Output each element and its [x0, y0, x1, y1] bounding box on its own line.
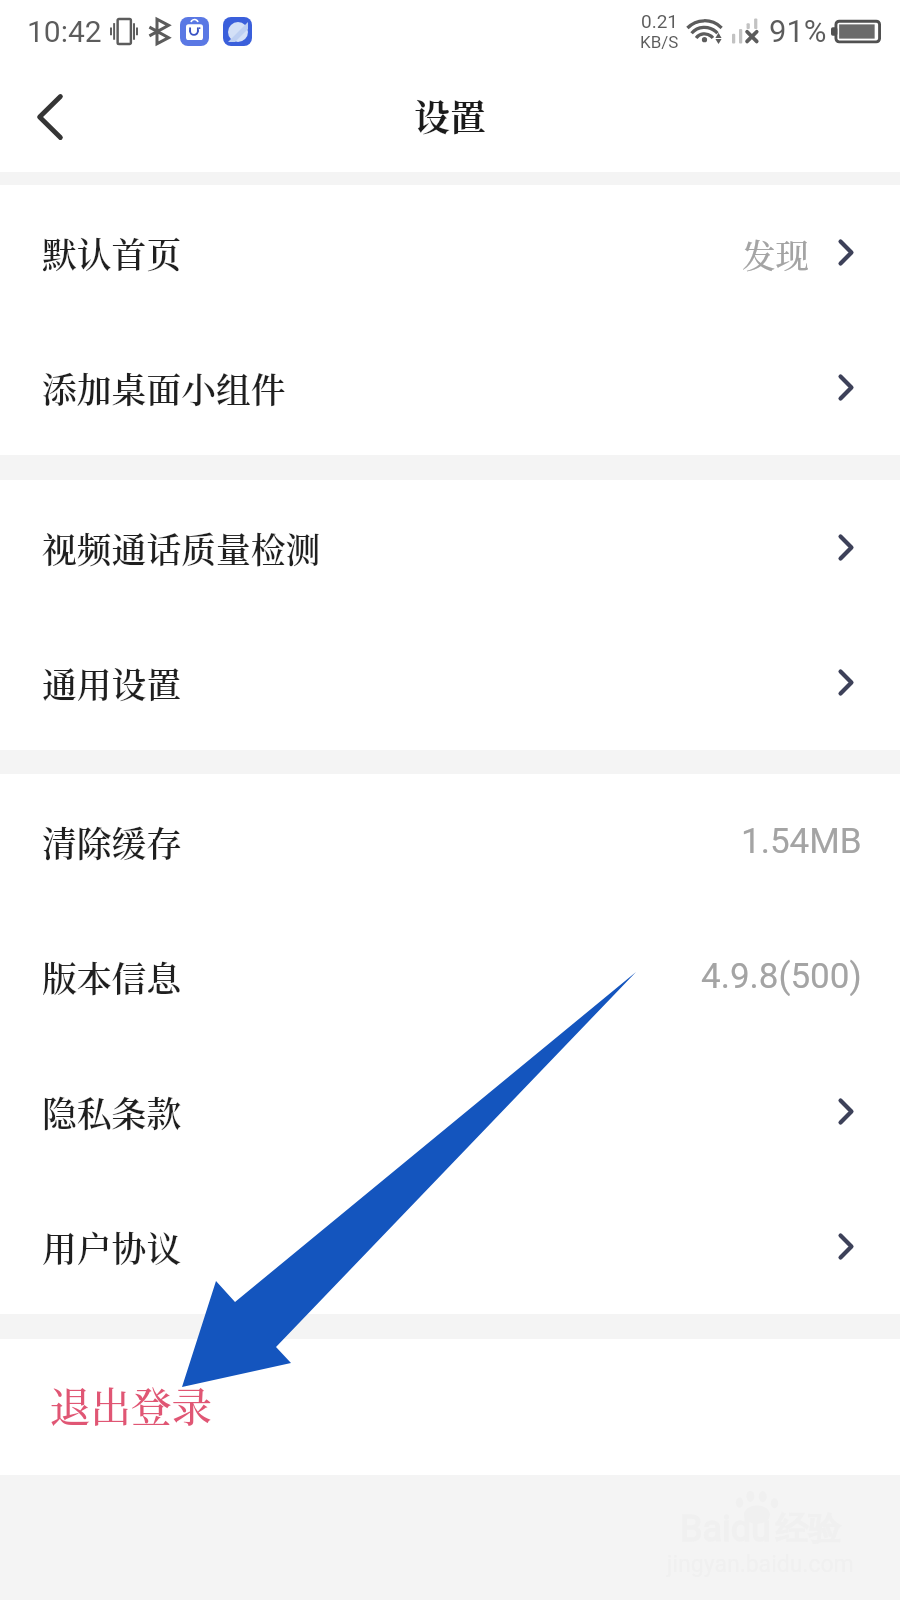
button[interactable]: 视频通话质量检测	[0, 480, 900, 615]
button[interactable]: 用户协议	[0, 1179, 900, 1314]
staticText: 隐私条款	[42, 1087, 182, 1137]
button[interactable]: 默认首页	[0, 185, 900, 320]
staticText: 版本信息	[42, 952, 182, 1002]
staticText: 默认首页	[42, 228, 182, 278]
staticText: 设置	[414, 90, 487, 142]
staticText: 10:42	[27, 14, 102, 49]
staticText: 添加桌面小组件	[42, 363, 286, 413]
staticText: 91%	[769, 13, 827, 49]
staticText: 退出登录	[50, 1375, 212, 1433]
staticText: 通用设置	[42, 658, 182, 708]
staticText: 0.21	[641, 10, 679, 32]
button[interactable]: 退出登录	[0, 1339, 900, 1475]
staticText: 4.9.8(500)	[701, 956, 862, 997]
staticText: 1.54MB	[741, 821, 862, 862]
button[interactable]: Back	[12, 79, 88, 155]
button[interactable]: 清除缓存	[0, 774, 900, 909]
staticText: KB/S	[640, 32, 679, 52]
staticText: 清除缓存	[42, 817, 182, 867]
staticText: 发现	[742, 229, 809, 277]
button[interactable]: 通用设置	[0, 615, 900, 750]
button[interactable]: 隐私条款	[0, 1044, 900, 1179]
button[interactable]: 版本信息	[0, 909, 900, 1044]
button[interactable]: 添加桌面小组件	[0, 320, 900, 455]
staticText: 用户协议	[42, 1222, 182, 1272]
staticText: 视频通话质量检测	[42, 523, 321, 573]
